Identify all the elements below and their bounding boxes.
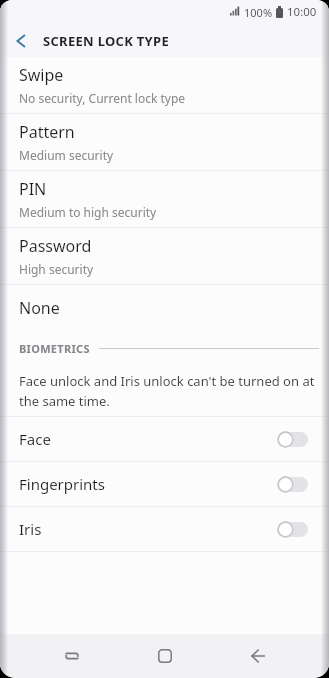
- staticText: None: [19, 297, 60, 319]
- staticText: Password: [19, 235, 92, 257]
- button[interactable]: Swipe: [0, 57, 329, 113]
- staticText: Medium to high security: [19, 204, 157, 220]
- button[interactable]: Iris: [0, 507, 329, 551]
- button[interactable]: None: [0, 285, 329, 331]
- button[interactable]: Password: [0, 228, 329, 284]
- button[interactable]: Pattern: [0, 114, 329, 170]
- staticText: 10:00: [287, 4, 317, 20]
- staticText: PIN: [19, 178, 47, 200]
- button[interactable]: [142, 634, 188, 678]
- staticText: Face: [19, 429, 51, 449]
- staticText: High security: [19, 261, 94, 277]
- button[interactable]: [235, 634, 281, 678]
- button[interactable]: PIN: [0, 171, 329, 227]
- button[interactable]: Face: [0, 417, 329, 461]
- staticText: Iris: [19, 519, 42, 539]
- button[interactable]: [8, 28, 34, 54]
- button[interactable]: [49, 634, 95, 678]
- staticText: Pattern: [19, 121, 75, 143]
- button[interactable]: Fingerprints: [0, 462, 329, 506]
- staticText: No security, Current lock type: [19, 90, 186, 106]
- staticText: Face unlock and Iris unlock can't be tur…: [19, 372, 315, 410]
- staticText: 100%: [244, 5, 273, 20]
- staticText: Swipe: [19, 64, 64, 86]
- staticText: BIOMETRICS: [19, 341, 90, 356]
- staticText: SCREEN LOCK TYPE: [43, 32, 169, 50]
- staticText: Medium security: [19, 147, 114, 163]
- staticText: Fingerprints: [19, 474, 105, 494]
